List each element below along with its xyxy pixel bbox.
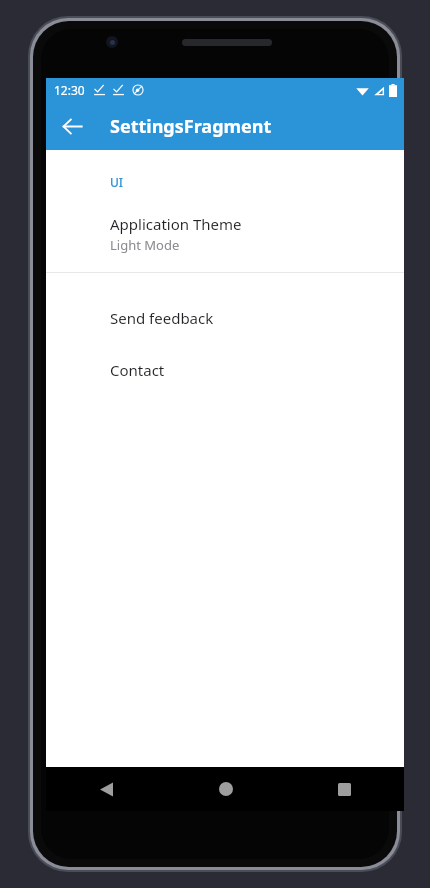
staticText: Application Theme [110, 214, 242, 234]
staticText: Contact [110, 360, 165, 380]
button[interactable]: Send feedback [46, 305, 404, 331]
staticText: UI [110, 174, 124, 190]
button[interactable]: Recent apps [285, 767, 404, 811]
staticText: Send feedback [110, 308, 214, 328]
button[interactable]: Home [166, 767, 285, 811]
staticText: SettingsFragment [110, 114, 272, 139]
button[interactable]: Back [52, 106, 92, 146]
button[interactable]: Application Theme [46, 212, 404, 264]
staticText: Light Mode [110, 236, 180, 254]
button[interactable]: Back [46, 767, 166, 811]
button[interactable]: Contact [46, 357, 404, 383]
staticText: 12:30 [54, 82, 85, 98]
